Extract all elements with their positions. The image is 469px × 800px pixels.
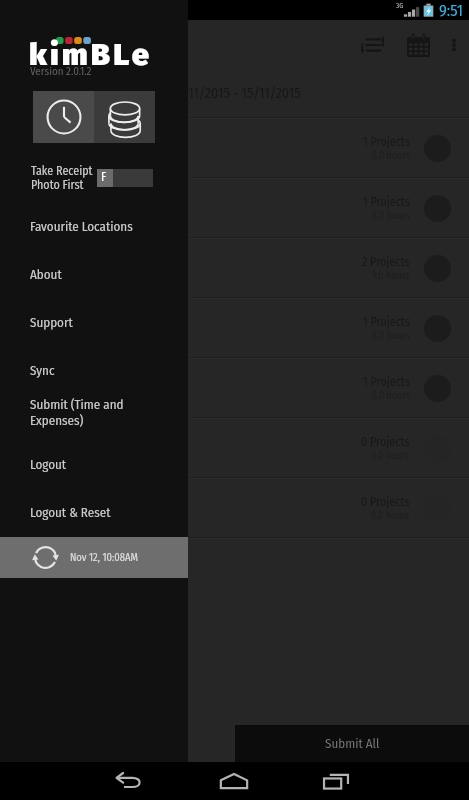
button[interactable]: Support [0,299,188,347]
staticText: 1 Projects [363,195,410,209]
staticText: Submit (Time and [30,397,124,413]
staticText: About [30,267,62,283]
button[interactable]: Submit All [235,725,469,762]
button[interactable]: About [0,251,188,299]
staticText: Expenses) [30,413,84,429]
button[interactable]: Recent apps [312,762,360,800]
button[interactable]: Sort [349,22,395,68]
staticText: F [101,170,107,184]
button[interactable]: Home [210,762,258,800]
button[interactable]: 0 Projects [0,419,469,477]
staticText: Photo First [31,178,84,192]
staticText: kimBLe [29,36,153,73]
button[interactable]: Expenses [94,91,155,143]
staticText: 1 Projects [363,375,410,389]
button[interactable]: Logout [0,441,188,489]
staticText: 09/11/2015 - 15/11/2015 [169,85,301,102]
button[interactable]: 2 Projects [0,239,469,297]
staticText: 0 Projects [361,495,410,509]
button[interactable]: 1 Projects [0,299,469,357]
button[interactable]: Favourite Locations [0,203,188,251]
button[interactable]: Submit (Time and [0,389,188,437]
button[interactable]: Take Receipt [0,158,188,198]
button[interactable]: Back [106,762,154,800]
button[interactable]: 1 Projects [0,359,469,417]
staticText: 0 Projects [361,435,410,449]
staticText: Take Receipt [31,164,93,178]
staticText: 9:51 [439,1,464,20]
staticText: Sync [30,363,55,379]
staticText: Logout & Reset [30,505,111,521]
button[interactable]: Calendar [395,22,441,68]
staticText: Favourite Locations [30,219,133,235]
staticText: 2 Projects [362,255,410,269]
button[interactable]: Nov 12, 10:08AM [0,537,188,578]
button[interactable]: Logout & Reset [0,489,188,537]
button[interactable]: 1 Projects [0,119,469,177]
staticText: Logout [30,457,67,473]
button[interactable]: 1 Projects [0,179,469,237]
staticText: Support [30,315,73,331]
staticText: Submit All [325,736,380,752]
staticText: 1 Projects [363,135,410,149]
staticText: 3G [396,1,404,9]
staticText: Version 2.0.1.2 [30,65,92,78]
button[interactable]: Time entries [33,91,94,143]
button[interactable]: Sync [0,347,188,395]
staticText: 1 Projects [363,315,410,329]
button[interactable]: 0 Projects [0,479,469,537]
staticText: Nov 12, 10:08AM [70,551,138,564]
